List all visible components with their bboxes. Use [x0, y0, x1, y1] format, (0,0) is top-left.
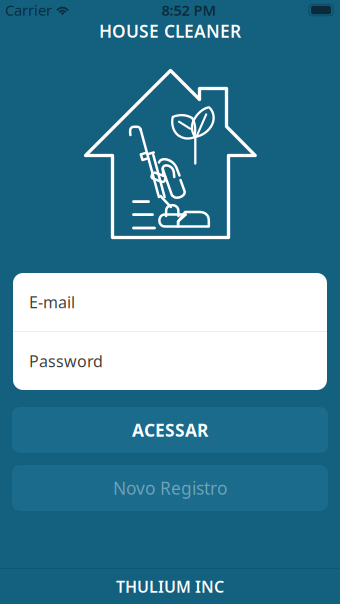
staticText: 8:52 PM: [161, 0, 216, 20]
staticText: HOUSE CLEANER: [99, 19, 241, 42]
button[interactable]: ACESSAR: [12, 407, 328, 453]
staticText: ACESSAR: [132, 418, 208, 441]
button[interactable]: Novo Registro: [12, 465, 328, 511]
staticText: E-mail: [29, 291, 75, 313]
staticText: Carrier: [5, 0, 52, 20]
staticText: THULIUM INC: [116, 576, 224, 597]
staticText: Novo Registro: [113, 476, 227, 499]
staticText: Password: [29, 350, 103, 372]
